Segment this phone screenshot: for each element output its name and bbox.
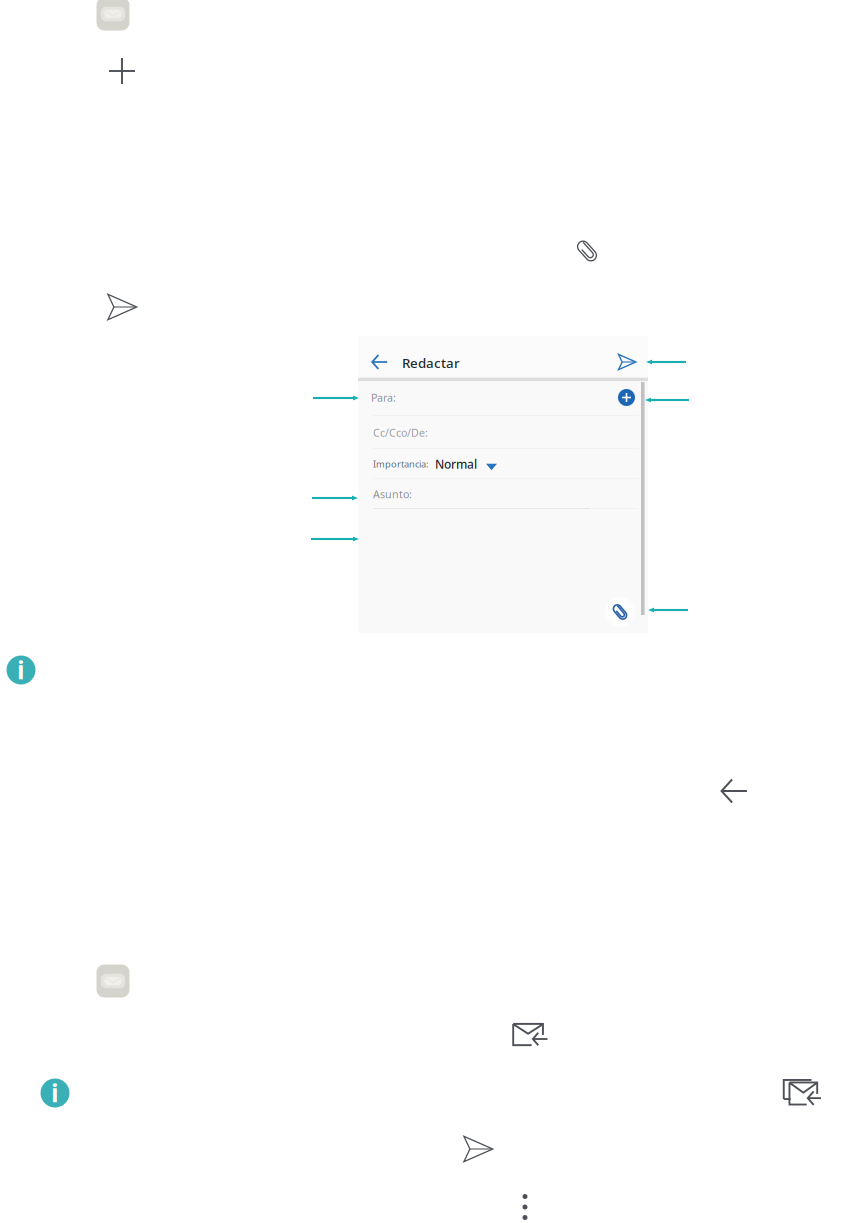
staticText: Cc/Cco/De: (373, 425, 428, 440)
button[interactable]: Responder (512, 1022, 548, 1048)
button[interactable]: Añadir destinatario (618, 389, 635, 406)
button[interactable]: Cambiar importancia (477, 453, 506, 475)
button[interactable]: Responder a todos (783, 1078, 821, 1106)
button[interactable]: Más información (40, 1078, 69, 1107)
staticText: Asunto: (373, 487, 412, 501)
staticText: Normal (435, 456, 477, 472)
staticText: Importancia: (373, 458, 429, 470)
staticText: i (51, 1076, 59, 1109)
button[interactable]: Nuevo mensaje (109, 58, 135, 84)
staticText: Para: (371, 390, 396, 405)
button[interactable]: Más opciones (514, 1191, 536, 1223)
staticText: Redactar (402, 354, 460, 372)
button[interactable]: Atrás (718, 776, 750, 806)
staticText: i (17, 653, 25, 686)
button[interactable]: Enviar (612, 347, 642, 377)
button[interactable]: Adjuntar archivo (605, 597, 635, 627)
button[interactable]: Más información (6, 655, 35, 684)
button[interactable]: Enviar (461, 1134, 495, 1164)
button[interactable]: Adjuntar (573, 237, 601, 265)
button[interactable]: Enviar (105, 292, 139, 322)
button[interactable]: Atrás (364, 347, 394, 377)
